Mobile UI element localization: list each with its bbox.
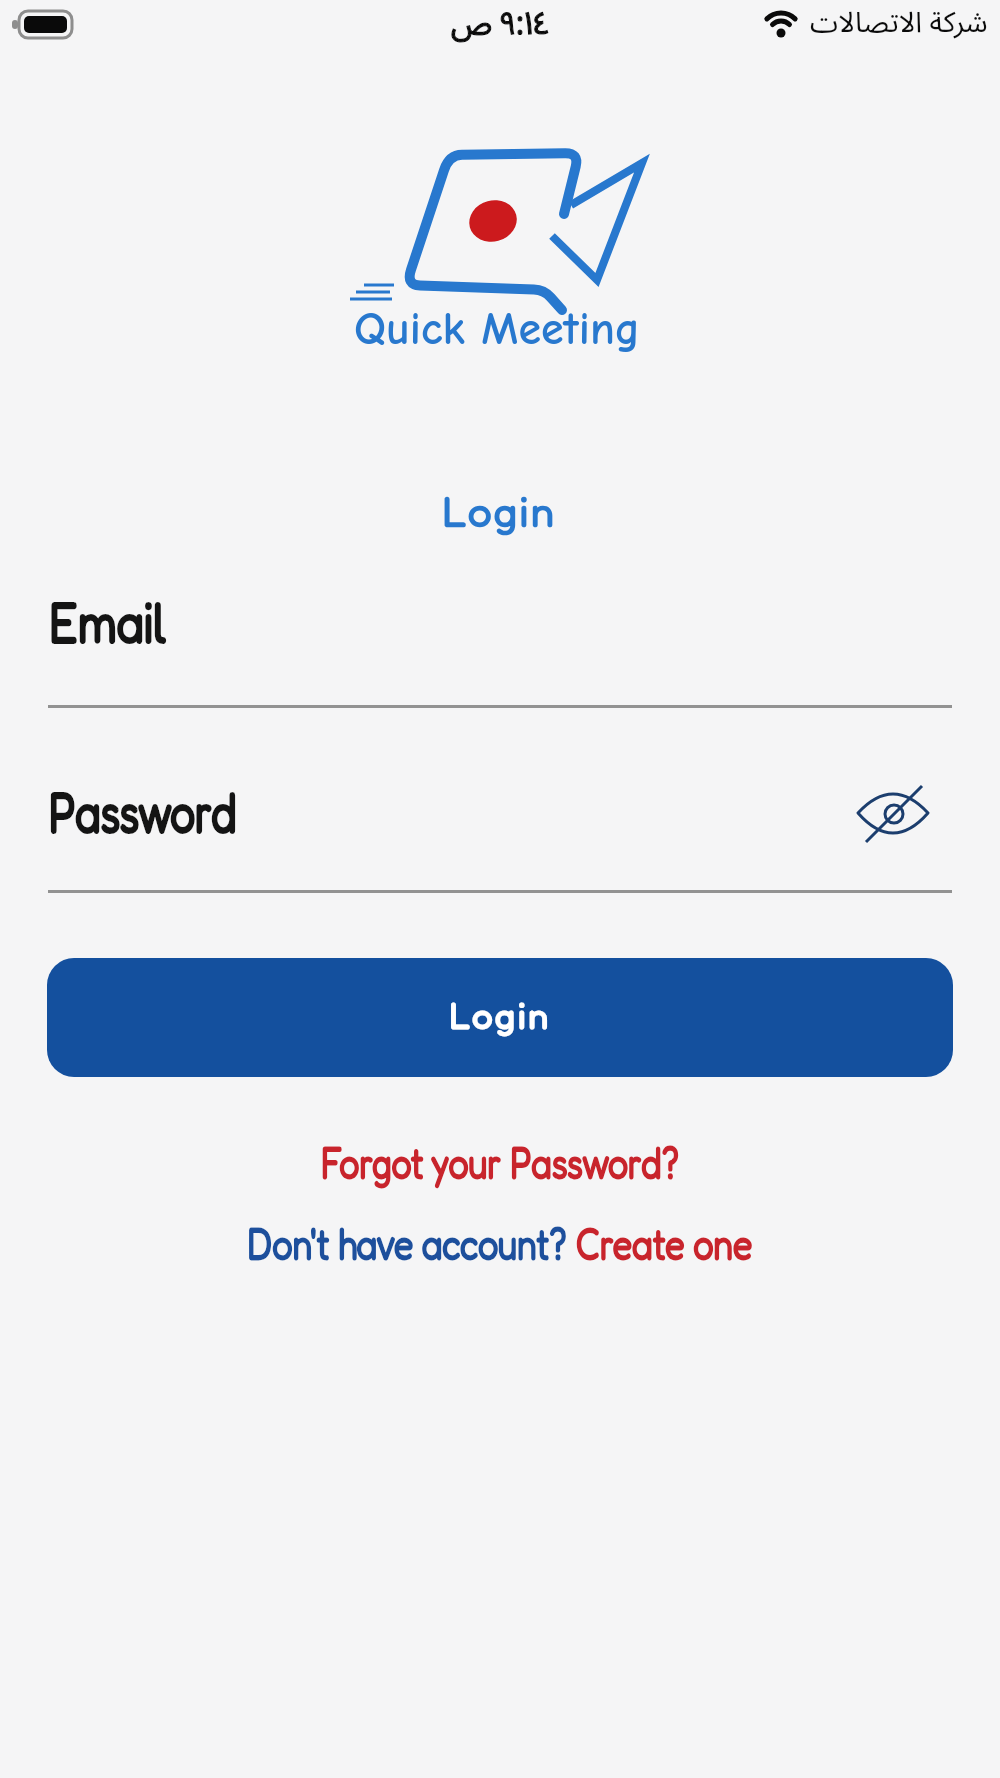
staticText: Forgot your Password? <box>321 1136 679 1188</box>
staticText: Password <box>49 778 237 843</box>
staticText: Don't have account? Create one <box>248 1217 752 1269</box>
button[interactable] <box>48 766 952 893</box>
staticText: ٩:١٤ ص <box>451 0 549 43</box>
staticText: Don't have account? Create one <box>248 1217 752 1269</box>
button[interactable] <box>48 578 952 708</box>
staticText: Forgot your Password? <box>321 1136 679 1188</box>
staticText: Quick Meeting <box>354 303 641 356</box>
button[interactable]: Forgot your Password? <box>280 1136 720 1188</box>
staticText: Password <box>49 778 237 843</box>
staticText: Login <box>443 486 557 536</box>
staticText: شركة الاتصالات <box>810 2 988 41</box>
staticText: Login <box>443 486 557 536</box>
staticText: Login <box>450 994 551 1036</box>
staticText: ٩:١٤ ص <box>451 0 549 43</box>
staticText: Email <box>49 588 166 653</box>
button[interactable]: Don't have account? Create one <box>194 1217 806 1269</box>
staticText: Email <box>49 588 166 653</box>
button[interactable]: Login <box>47 958 953 1077</box>
button[interactable] <box>848 775 940 853</box>
staticText: Login <box>450 994 551 1036</box>
